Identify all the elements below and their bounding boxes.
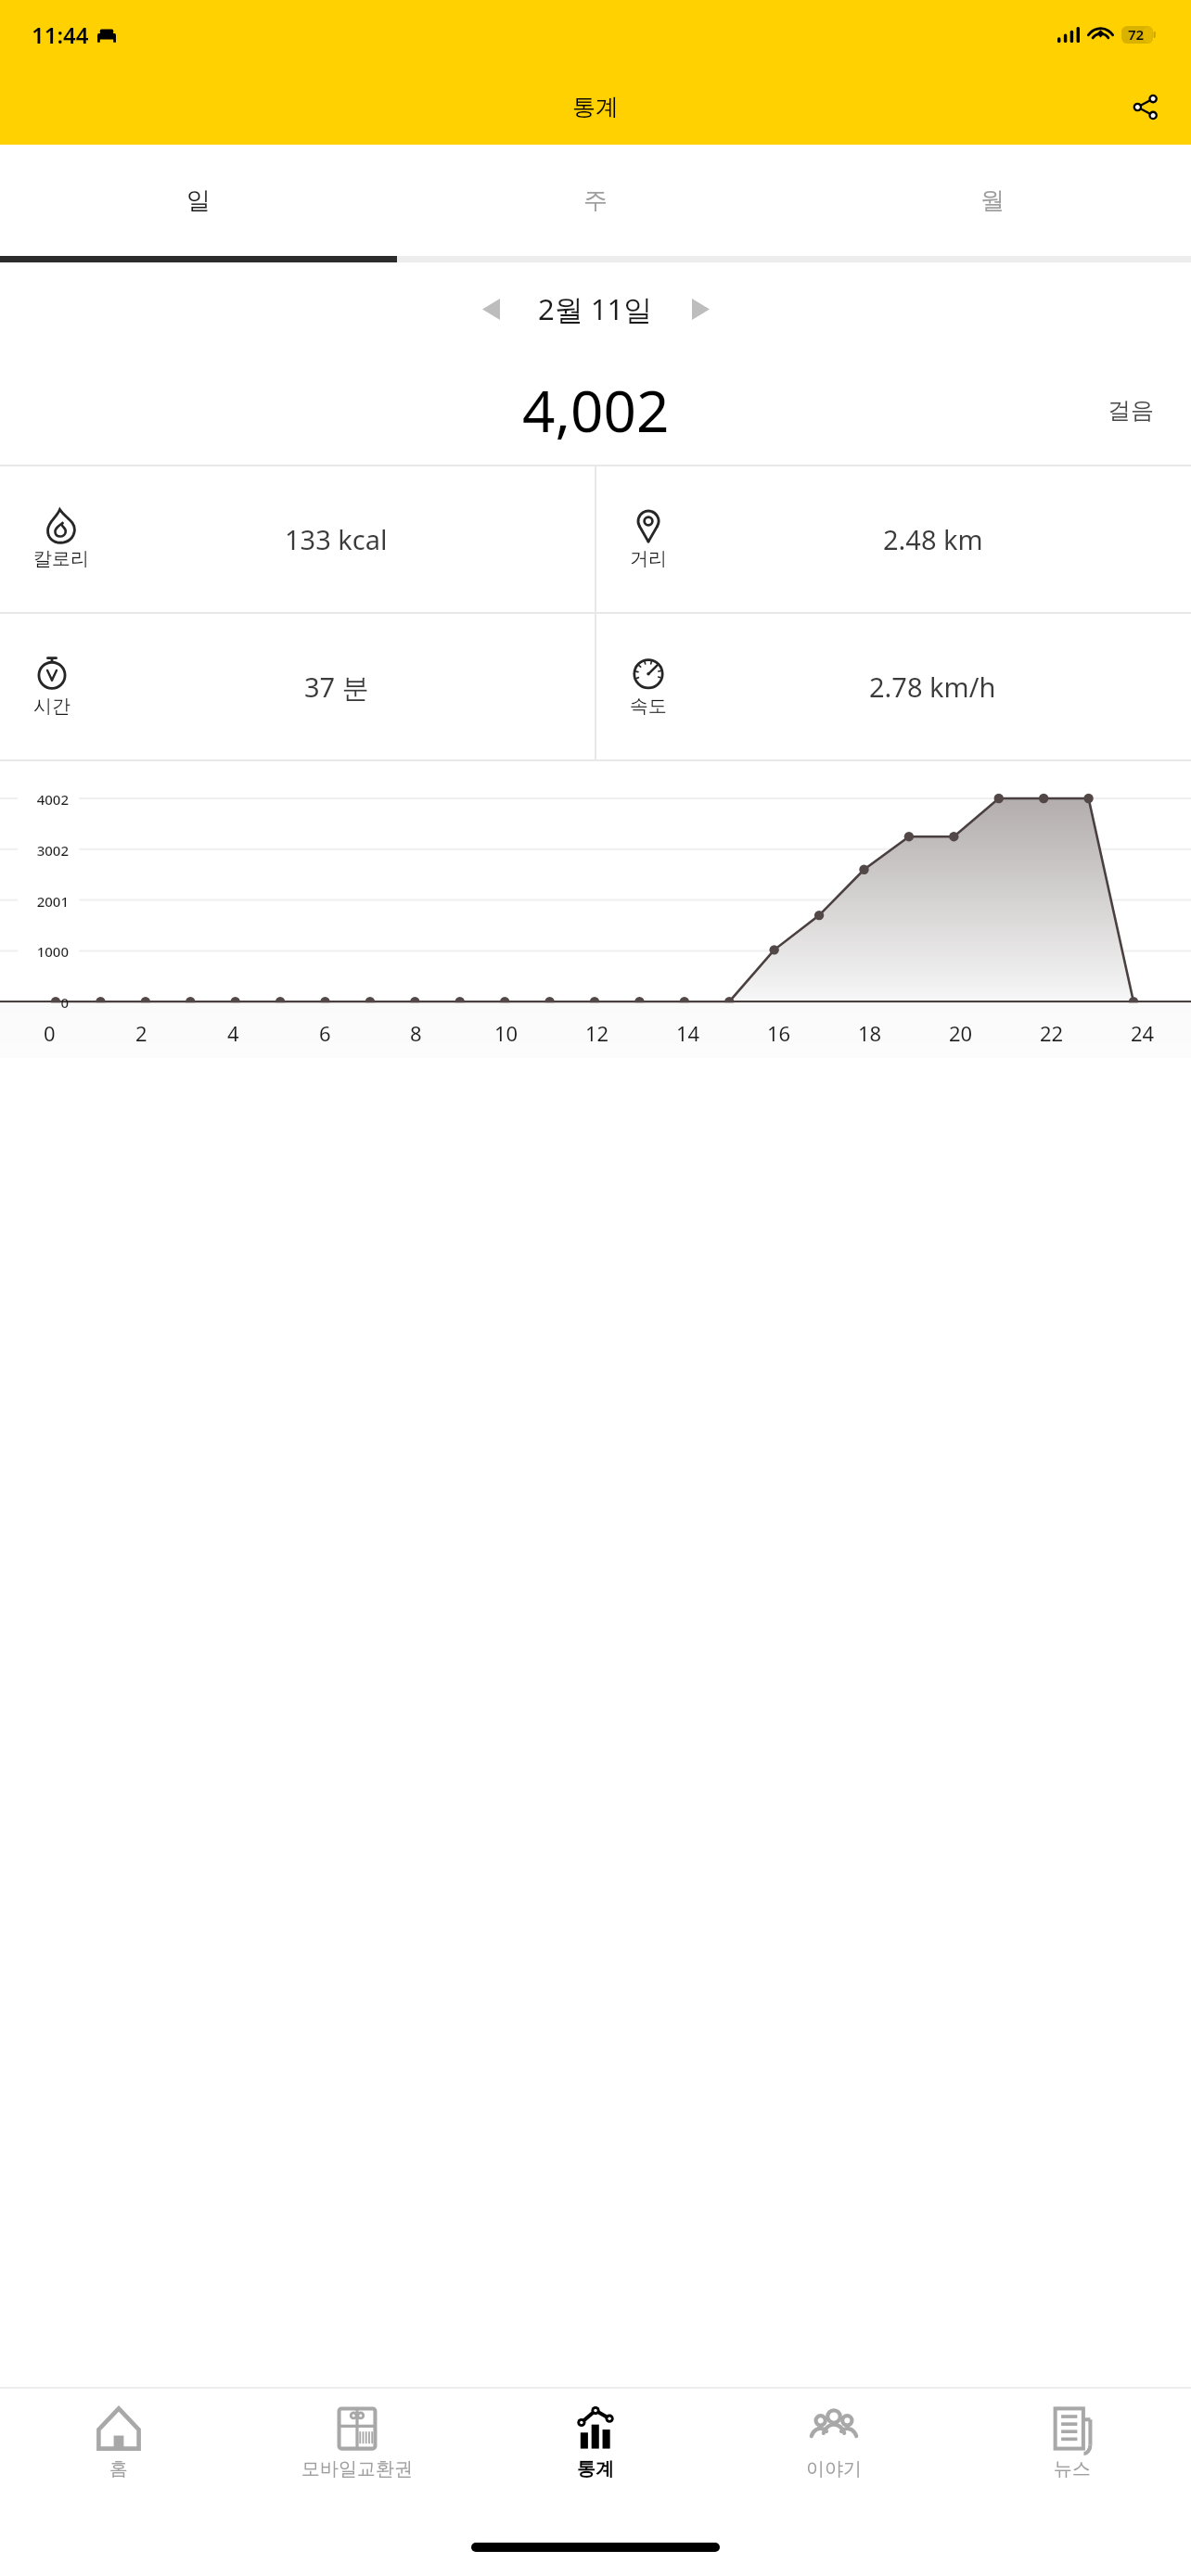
staticText: 2.48 km [883, 521, 983, 557]
staticText: 2 [135, 1019, 147, 1047]
button[interactable]: 뉴스 [953, 2389, 1191, 2519]
staticText: 홈 [109, 2457, 128, 2480]
staticText: 통계 [572, 93, 619, 121]
staticText: 속도 [630, 695, 667, 718]
staticText: 일 [186, 185, 211, 216]
button[interactable]: 주 [397, 145, 794, 256]
staticText: 4 [227, 1019, 239, 1047]
button[interactable]: 칼로리 [0, 466, 595, 612]
staticText: 월 [980, 185, 1005, 216]
staticText: 뉴스 [1054, 2457, 1091, 2480]
staticText: 12 [585, 1019, 609, 1047]
staticText: 0 [44, 1019, 56, 1047]
staticText: 24 [1131, 1019, 1155, 1047]
staticText: 통계 [577, 2457, 614, 2480]
button[interactable]: Next day [673, 282, 727, 336]
staticText: 72 [1128, 25, 1145, 44]
staticText: 걸음 [1108, 396, 1154, 425]
staticText: 3002 [15, 841, 69, 860]
button[interactable]: Previous day [464, 282, 518, 336]
staticText: 2.78 km/h [869, 669, 996, 705]
staticText: 2월 11일 [538, 289, 653, 328]
staticText: 11:44 [32, 19, 89, 50]
staticText: 1000 [15, 942, 69, 961]
button[interactable]: 시간 [0, 614, 595, 759]
staticText: 4,002 [522, 371, 670, 449]
staticText: 0 [15, 993, 69, 1012]
staticText: 이야기 [806, 2457, 862, 2480]
button[interactable]: 월 [794, 145, 1191, 256]
staticText: 칼로리 [33, 547, 89, 570]
staticText: 4002 [15, 790, 69, 809]
staticText: 거리 [630, 547, 667, 570]
staticText: 20 [949, 1019, 973, 1047]
button[interactable]: 홈 [0, 2389, 237, 2519]
button[interactable]: 모바일교환권 [237, 2389, 476, 2519]
button[interactable]: 속도 [596, 614, 1191, 759]
button[interactable]: 이야기 [714, 2389, 953, 2519]
button[interactable]: 거리 [596, 466, 1191, 612]
staticText: 주 [583, 185, 608, 216]
staticText: 37 분 [304, 669, 369, 706]
button[interactable]: 일 [0, 145, 397, 256]
button[interactable]: 통계 [476, 2389, 714, 2519]
staticText: 14 [676, 1019, 700, 1047]
staticText: 133 kcal [285, 521, 388, 557]
staticText: 22 [1040, 1019, 1064, 1047]
staticText: 16 [767, 1019, 791, 1047]
staticText: 모바일교환권 [301, 2457, 413, 2480]
staticText: 10 [494, 1019, 519, 1047]
staticText: 6 [319, 1019, 331, 1047]
staticText: 시간 [33, 695, 70, 718]
staticText: 2001 [15, 892, 69, 911]
staticText: 18 [858, 1019, 882, 1047]
staticText: 8 [410, 1019, 422, 1047]
button[interactable]: Share [1121, 83, 1169, 131]
